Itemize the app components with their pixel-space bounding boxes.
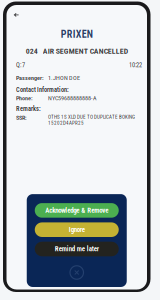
staticText: NYC59688888888-A [48, 94, 97, 102]
staticText: Acknowledge & Remove [45, 206, 108, 214]
staticText: Remarks: [16, 105, 41, 112]
staticText: PRIXEN [61, 28, 93, 40]
staticText: OTHS 1S XLD DUE TO DUPLICATE BOKING 1520… [48, 114, 135, 126]
button[interactable]: Back [6, 5, 24, 22]
staticText: AIR SEGMENT CANCELLED [43, 47, 128, 56]
staticText: Remind me later [55, 245, 99, 253]
button[interactable]: Dismiss [69, 261, 84, 280]
staticText: Phone: [16, 94, 33, 102]
staticText: 1.JHON DOE [48, 74, 80, 81]
staticText: Q: 7 [16, 61, 25, 69]
button[interactable]: Remind me later [35, 242, 119, 256]
staticText: 10:22 [129, 61, 142, 69]
staticText: Contact Information: [16, 86, 69, 93]
staticText: Ignore [69, 226, 85, 234]
button[interactable]: Acknowledge & Remove [35, 203, 119, 218]
staticText: SSR: [16, 114, 27, 121]
staticText: 024 [26, 47, 38, 56]
button[interactable]: Ignore [35, 222, 119, 237]
staticText: Passenger: [16, 74, 44, 81]
